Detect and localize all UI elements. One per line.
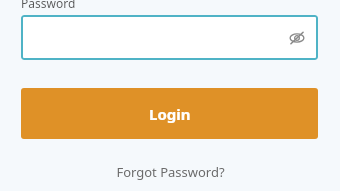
button[interactable]: Show password [21,15,318,60]
staticText: Forgot Password? [116,163,225,181]
button[interactable]: Forgot Password? [0,160,340,184]
button[interactable]: Login [21,88,318,139]
button[interactable]: Show password [289,30,305,46]
staticText: Login [149,104,191,124]
staticText: Password [21,0,76,11]
